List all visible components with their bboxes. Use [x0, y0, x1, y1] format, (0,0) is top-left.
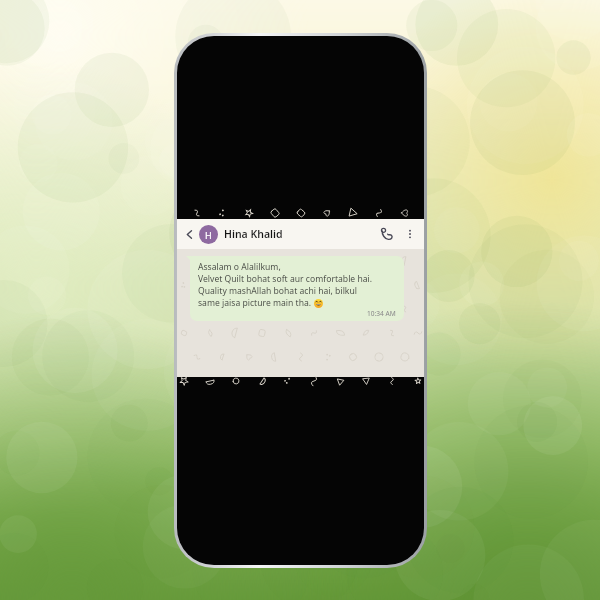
staticText: 10:34 AM — [367, 309, 396, 318]
staticText: Assalam o Alalilkum, — [198, 261, 281, 273]
staticText: Quality mashAllah bohat achi hai, bilkul — [198, 285, 357, 297]
button[interactable]: Assalam o Alalilkum, — [190, 256, 404, 321]
button[interactable]: Hina Khalid — [224, 219, 377, 249]
button[interactable]: Back — [182, 227, 196, 241]
button[interactable]: H — [199, 225, 218, 244]
staticText: Velvet Quilt bohat soft aur comfortable … — [198, 273, 373, 285]
staticText: same jaisa picture main tha. — [198, 297, 314, 309]
staticText: Hina Khalid — [224, 227, 283, 241]
button[interactable]: More options — [401, 225, 419, 243]
staticText: H — [205, 229, 212, 241]
button[interactable]: Call — [377, 224, 397, 244]
